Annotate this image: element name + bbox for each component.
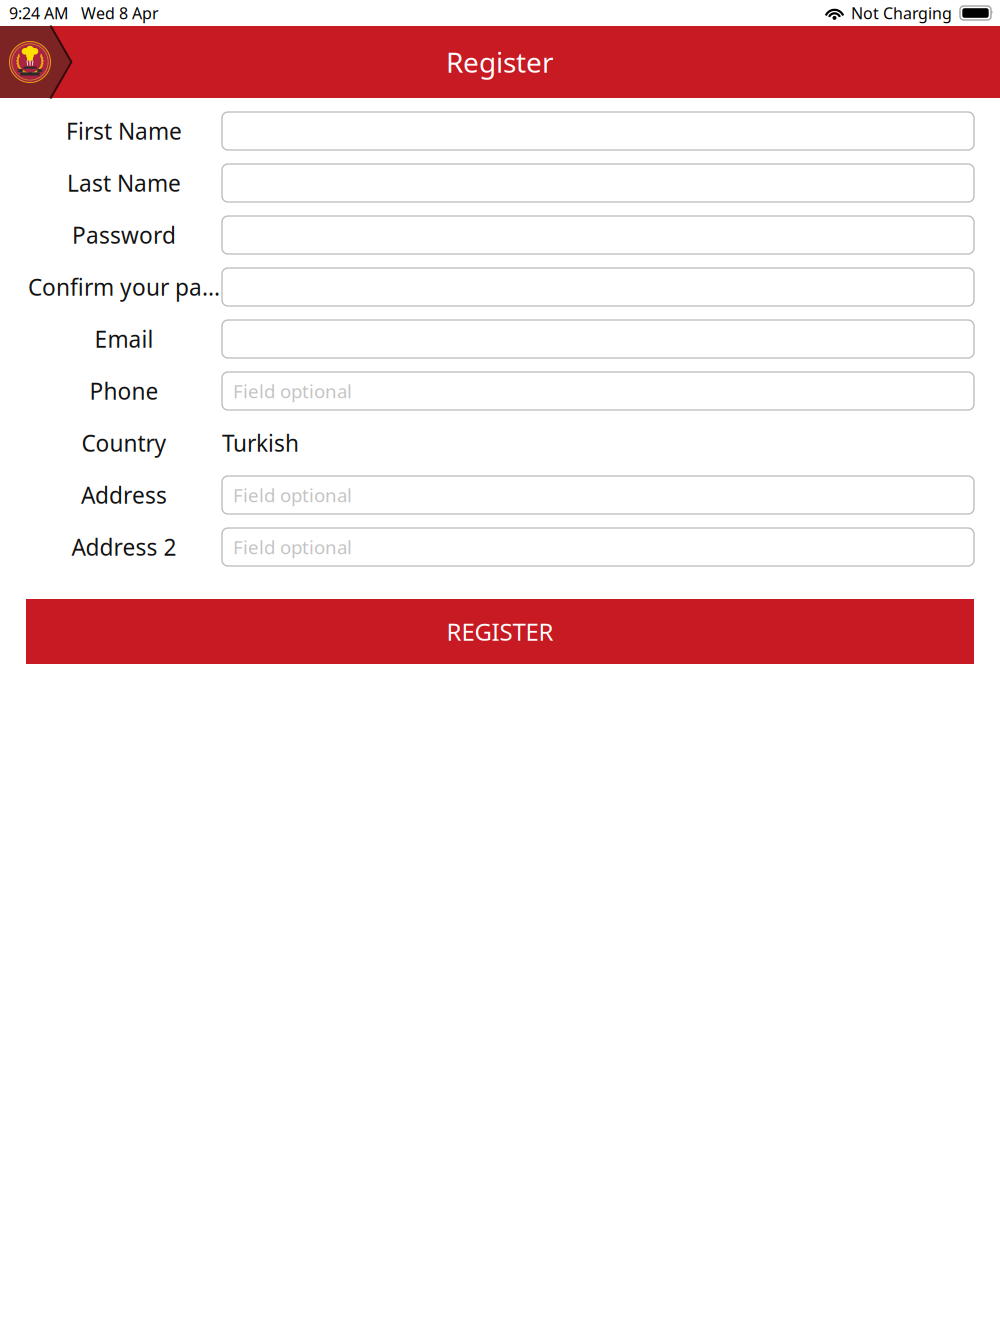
staticText: Address 2 <box>71 532 176 562</box>
button[interactable]: REGISTER <box>26 599 974 664</box>
staticText: Field optional <box>233 379 352 403</box>
button[interactable]: Confirm your pa... <box>222 268 974 306</box>
staticText: Last Name <box>67 168 181 198</box>
staticText: First Name <box>66 116 182 146</box>
staticText: Address <box>81 480 167 510</box>
staticText: Password <box>72 220 176 250</box>
button[interactable]: Address <box>222 476 974 514</box>
button[interactable]: Email <box>222 320 974 358</box>
staticText: Email <box>94 324 153 354</box>
button[interactable]: Address 2 <box>222 528 974 566</box>
button[interactable]: Turkish <box>222 424 974 462</box>
button[interactable]: First Name <box>222 112 974 150</box>
staticText: Country <box>81 428 166 458</box>
button[interactable]: Home <box>0 26 80 98</box>
staticText: Register <box>446 43 554 81</box>
button[interactable]: Phone <box>222 372 974 410</box>
staticText: 9:24 AM <box>9 2 69 24</box>
staticText: Field optional <box>233 535 352 559</box>
staticText: Field optional <box>233 483 352 507</box>
staticText: Turkish <box>222 428 299 458</box>
staticText: Confirm your pa... <box>28 272 220 302</box>
button[interactable]: Password <box>222 216 974 254</box>
staticText: REGISTER <box>446 616 553 647</box>
staticText: Phone <box>89 376 158 406</box>
button[interactable]: Last Name <box>222 164 974 202</box>
staticText: Wed 8 Apr <box>81 2 159 24</box>
staticText: Not Charging <box>851 2 952 24</box>
